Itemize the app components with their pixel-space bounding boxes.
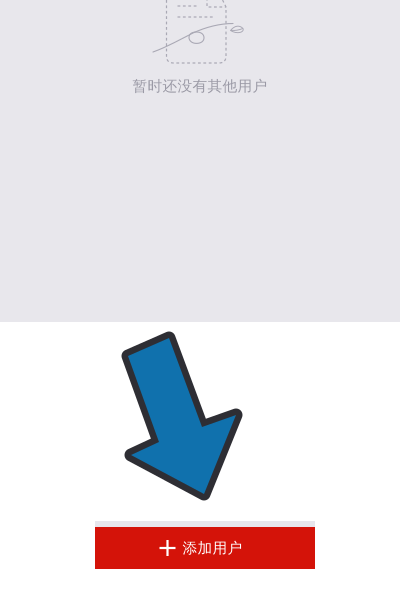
button[interactable]: 添加用户 <box>95 527 315 569</box>
staticText: 添加用户 <box>182 539 242 557</box>
staticText: 暂时还没有其他用户 <box>132 77 267 95</box>
